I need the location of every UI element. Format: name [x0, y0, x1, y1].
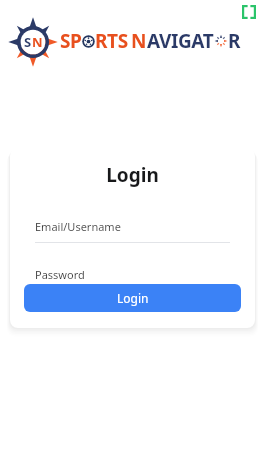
staticText: Password	[35, 267, 85, 282]
staticText: Login	[10, 162, 255, 188]
button[interactable]: Scan code	[240, 3, 258, 21]
staticText: Login	[117, 290, 149, 306]
staticText: N	[32, 33, 43, 51]
button[interactable]: Login	[24, 284, 241, 312]
staticText: Email/Username	[35, 219, 121, 234]
button[interactable]: Email/Username	[35, 219, 230, 243]
button[interactable]: Password	[35, 267, 230, 291]
staticText: R	[228, 28, 241, 54]
staticText: S	[24, 33, 32, 51]
staticText: N	[131, 28, 147, 54]
staticText: AVIGAT	[147, 28, 214, 54]
staticText: SP	[60, 28, 82, 54]
staticText: RTS	[95, 28, 128, 54]
